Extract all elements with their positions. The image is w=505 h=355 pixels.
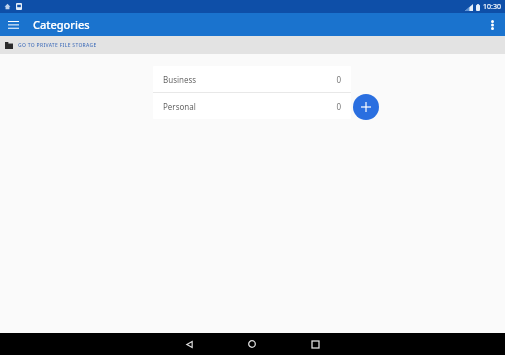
button[interactable]: Open navigation drawer	[3, 15, 23, 35]
button[interactable]: Home	[241, 333, 263, 355]
button[interactable]: Recent apps	[304, 333, 326, 355]
staticText: 0	[336, 74, 341, 85]
button[interactable]: Personal	[153, 93, 351, 119]
button[interactable]: Back	[178, 333, 200, 355]
staticText: Business	[163, 74, 197, 85]
staticText: Categories	[33, 17, 90, 32]
staticText: 0	[336, 101, 341, 112]
button[interactable]: Business	[153, 66, 351, 92]
staticText: Personal	[163, 101, 196, 112]
staticText: GO TO PRIVATE FILE STORAGE	[18, 42, 97, 49]
button[interactable]: Add category	[353, 94, 379, 120]
button[interactable]: GO TO PRIVATE FILE STORAGE	[0, 36, 505, 54]
staticText: 10:30	[483, 2, 501, 12]
button[interactable]: More options	[482, 15, 502, 35]
